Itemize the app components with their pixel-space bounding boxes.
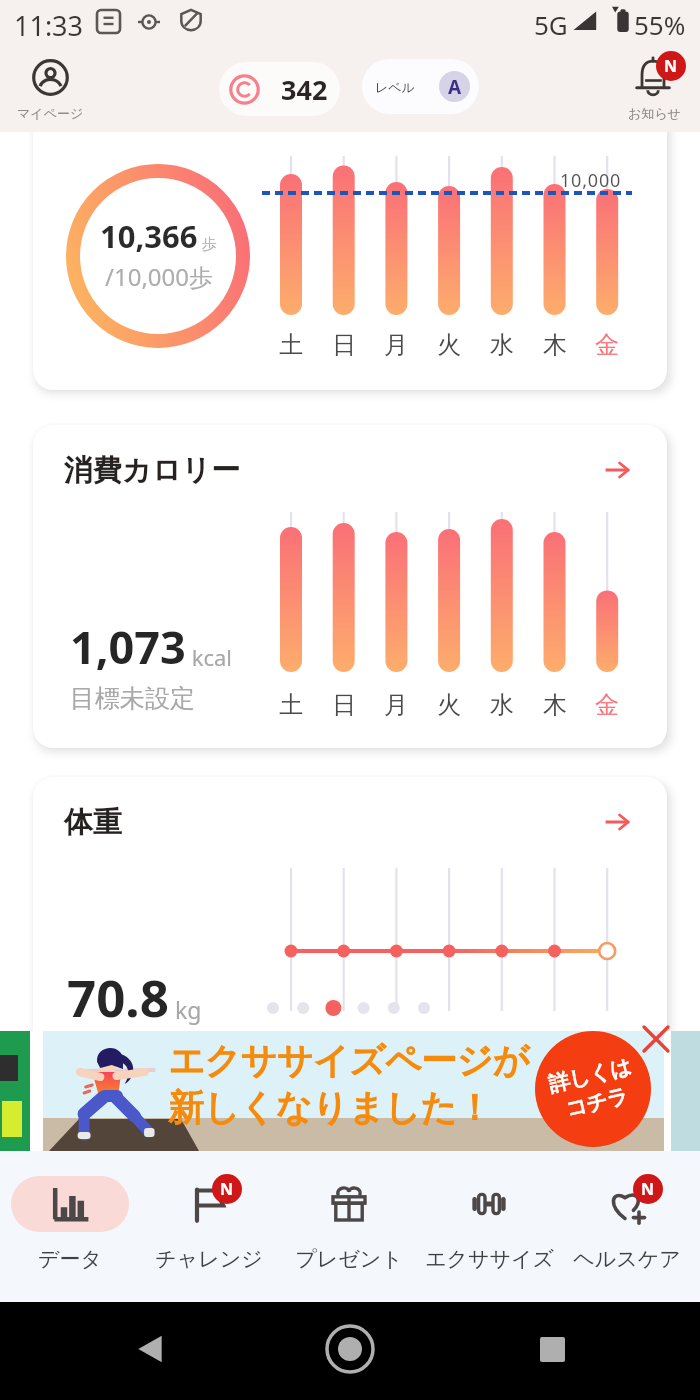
staticText: データ — [38, 1246, 102, 1272]
staticText: N — [641, 1178, 655, 1200]
staticText: 日 — [332, 690, 356, 720]
button[interactable]: 体重 — [33, 777, 667, 1060]
button[interactable]: プレゼント — [279, 1151, 419, 1302]
staticText: A — [448, 74, 462, 100]
button[interactable]: レベル — [362, 59, 479, 114]
staticText: エクササイズ — [425, 1246, 554, 1272]
staticText: 詳しくは — [546, 1053, 634, 1097]
staticText: マイページ — [17, 105, 84, 121]
staticText: レベル — [375, 79, 415, 95]
staticText: N — [664, 55, 678, 77]
staticText: 月 — [384, 690, 408, 720]
staticText: 目標未設定 — [70, 683, 195, 714]
staticText: kg — [169, 994, 202, 1025]
button[interactable]: 閉じる — [638, 1021, 674, 1057]
staticText: 土 — [279, 330, 303, 360]
staticText: 10,366 — [100, 215, 198, 257]
staticText: 日 — [332, 330, 356, 360]
staticText: 消費カロリー — [64, 452, 241, 489]
button[interactable]: Back — [122, 1321, 178, 1377]
staticText: 水 — [490, 330, 514, 360]
button[interactable]: Home — [322, 1321, 378, 1377]
button[interactable] — [0, 1031, 30, 1151]
button[interactable]: 10,366 — [33, 108, 667, 390]
button[interactable]: 342 — [219, 62, 340, 116]
button[interactable]: エクササイズページが — [43, 1031, 664, 1151]
staticText: 金 — [595, 690, 619, 720]
staticText: kcal — [186, 642, 233, 672]
staticText: 5G — [534, 7, 568, 42]
button[interactable]: エクササイズ — [419, 1151, 559, 1302]
staticText: 水 — [490, 690, 514, 720]
button[interactable]: チャレンジ — [139, 1151, 279, 1302]
staticText: コチラ — [563, 1083, 630, 1122]
staticText: 火 — [437, 690, 461, 720]
button[interactable]: データ — [0, 1151, 140, 1302]
staticText: 10,000 — [560, 168, 622, 193]
staticText: 体重 — [64, 804, 122, 841]
staticText: 月 — [384, 330, 408, 360]
button[interactable]: Recents — [524, 1321, 580, 1377]
staticText: お知らせ — [628, 105, 681, 121]
button[interactable]: ヘルスケア — [557, 1151, 697, 1302]
staticText: チャレンジ — [155, 1246, 263, 1272]
button[interactable]: お知らせ — [612, 52, 696, 124]
staticText: 342 — [281, 71, 328, 108]
staticText: 55% — [634, 7, 686, 42]
staticText: 木 — [543, 690, 567, 720]
staticText: ヘルスケア — [573, 1246, 681, 1272]
button[interactable]: 消費カロリー — [33, 425, 667, 748]
staticText: /10,000歩 — [105, 260, 213, 293]
staticText: 火 — [437, 330, 461, 360]
button[interactable]: マイページ — [8, 52, 92, 124]
staticText: 歩 — [198, 233, 217, 253]
staticText: 土 — [279, 690, 303, 720]
staticText: 新しくなりました！ — [168, 1085, 492, 1130]
staticText: 金 — [595, 330, 619, 360]
staticText: N — [220, 1178, 234, 1200]
staticText: 11:33 — [14, 7, 84, 44]
staticText: プレゼント — [295, 1246, 403, 1272]
staticText: 70.8 — [67, 962, 169, 1031]
staticText: エクササイズページが — [168, 1038, 529, 1083]
staticText: 1,073 — [70, 616, 186, 677]
staticText: 木 — [543, 330, 567, 360]
